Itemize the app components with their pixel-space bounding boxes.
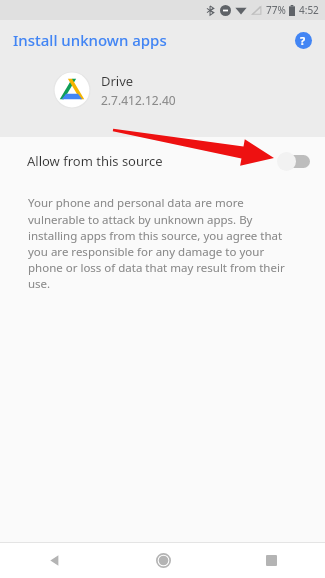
staticText: 2.7.412.12.40 [101, 92, 176, 108]
staticText: 4:52 [299, 3, 319, 17]
button[interactable]: Recent apps [217, 543, 325, 578]
button[interactable]: Help [291, 28, 315, 52]
staticText: Drive [101, 72, 134, 90]
staticText: ? [300, 33, 306, 48]
staticText: 77% [266, 3, 286, 17]
staticText: Your phone and personal data are more vu… [28, 195, 301, 291]
staticText: Install unknown apps [13, 30, 167, 50]
button[interactable]: Back [0, 543, 109, 578]
button[interactable]: Allow from this source [0, 137, 325, 185]
staticText: Allow from this source [27, 152, 163, 170]
button[interactable]: Allow from this source [277, 148, 313, 174]
button[interactable]: Home [109, 543, 217, 578]
